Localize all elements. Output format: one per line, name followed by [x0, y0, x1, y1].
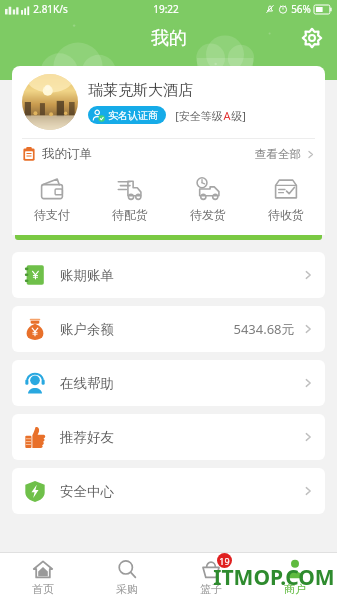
- button[interactable]: 19: [169, 553, 253, 600]
- staticText: 实名认证商: [108, 109, 158, 122]
- staticText: 采购: [116, 582, 138, 596]
- button[interactable]: 瑞莱克斯大酒店: [12, 66, 325, 138]
- staticText: 我的: [151, 27, 187, 50]
- button[interactable]: 账期账单: [12, 252, 325, 298]
- button[interactable]: 首页: [0, 553, 85, 600]
- staticText: 商户: [284, 582, 306, 596]
- button[interactable]: Settings: [295, 21, 329, 55]
- staticText: 推荐好友: [60, 429, 114, 446]
- staticText: 瑞莱克斯大酒店: [88, 81, 193, 100]
- staticText: 安全中心: [60, 483, 114, 500]
- staticText: 查看全部: [255, 147, 301, 161]
- staticText: 首页: [32, 582, 54, 596]
- button[interactable]: 采购: [85, 553, 169, 600]
- staticText: 19:22: [153, 2, 179, 16]
- staticText: 待配货: [112, 207, 148, 222]
- button[interactable]: 待支付: [12, 171, 91, 227]
- button[interactable]: 待配货: [91, 171, 169, 227]
- staticText: 账户余额: [60, 321, 114, 338]
- staticText: 在线帮助: [60, 375, 114, 392]
- staticText: 待支付: [34, 207, 70, 222]
- button[interactable]: 实名认证商: [88, 106, 166, 124]
- staticText: 我的订单: [42, 146, 92, 162]
- button[interactable]: 待收货: [247, 171, 325, 227]
- staticText: 账期账单: [60, 267, 114, 284]
- button[interactable]: 推荐好友: [12, 414, 325, 460]
- staticText: 待收货: [268, 207, 304, 222]
- button[interactable]: 账户余额: [12, 306, 325, 352]
- staticText: 待发货: [190, 207, 226, 222]
- staticText: 5434.68元: [233, 320, 295, 338]
- button[interactable]: 安全中心: [12, 468, 325, 514]
- staticText: 19: [219, 555, 230, 567]
- staticText: 56%: [291, 2, 311, 16]
- staticText: ITMOP.COM: [213, 563, 335, 592]
- staticText: 篮子: [200, 582, 222, 596]
- staticText: [安全等级: [175, 108, 223, 123]
- button[interactable]: 我的订单: [12, 139, 325, 169]
- staticText: 级]: [231, 108, 246, 123]
- button[interactable]: 商户: [253, 553, 337, 600]
- button[interactable]: 在线帮助: [12, 360, 325, 406]
- staticText: A: [223, 108, 231, 123]
- button[interactable]: 待发货: [169, 171, 247, 227]
- staticText: 2.81K/s: [33, 2, 68, 16]
